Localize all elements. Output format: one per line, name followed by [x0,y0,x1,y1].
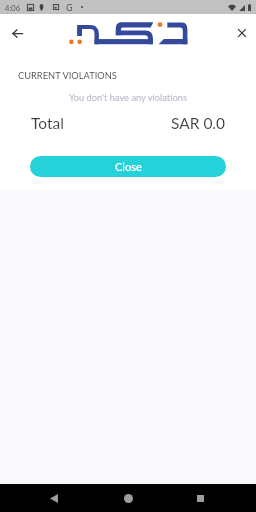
button[interactable]: Back [43,487,65,509]
staticText: SAR 0.0 [171,114,226,133]
staticText: Total [31,114,64,133]
staticText: G [66,2,73,13]
button[interactable]: Close [231,22,253,44]
staticText: CURRENT VIOLATIONS [18,70,117,81]
staticText: Close [115,160,142,173]
button[interactable]: Close [30,156,226,177]
staticText: 4:06 [5,3,21,12]
button[interactable]: Back [6,22,28,44]
staticText: You don't have any violations [0,92,256,103]
button[interactable]: Home [117,487,139,509]
button[interactable]: Recents [189,487,211,509]
